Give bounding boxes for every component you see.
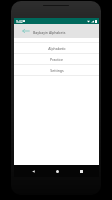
button[interactable]: Settings — [14, 65, 99, 76]
staticText: 9:42 — [16, 19, 23, 24]
staticText: Settings — [50, 68, 64, 73]
staticText: Practice — [50, 57, 63, 62]
button[interactable]: Recent apps — [76, 166, 86, 176]
button[interactable]: Home — [52, 166, 62, 176]
staticText: Baybayin Alphabets — [33, 30, 66, 35]
button[interactable]: Alphabetic — [14, 43, 99, 54]
button[interactable]: Practice — [14, 54, 99, 65]
staticText: Alphabetic — [48, 46, 66, 51]
button[interactable]: Back — [28, 166, 38, 176]
button[interactable]: Navigate up — [22, 27, 30, 35]
